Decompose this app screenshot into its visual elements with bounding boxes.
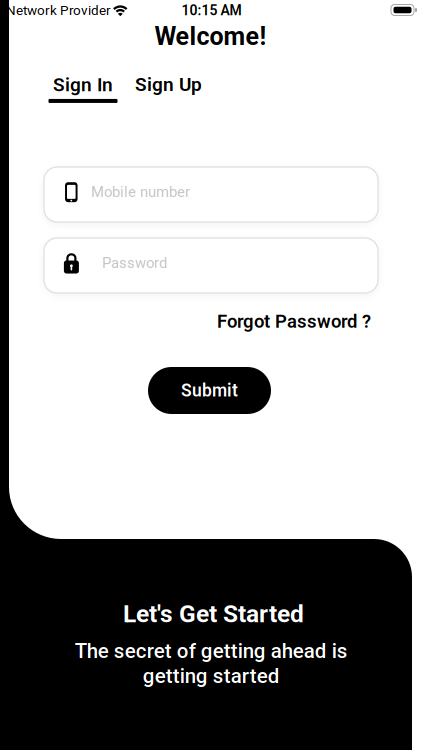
button[interactable]: Submit bbox=[148, 367, 271, 414]
staticText: Mobile number bbox=[91, 183, 190, 201]
staticText: Submit bbox=[181, 380, 238, 401]
button[interactable]: Mobile number bbox=[44, 167, 378, 222]
staticText: Sign Up bbox=[135, 73, 202, 96]
button[interactable]: Password bbox=[44, 238, 378, 293]
staticText: Password bbox=[102, 254, 167, 272]
staticText: The secret of getting ahead is getting s… bbox=[74, 639, 347, 688]
staticText: Network Provider bbox=[6, 3, 111, 18]
staticText: 10:15 AM bbox=[181, 2, 241, 19]
button[interactable]: Sign Up bbox=[135, 73, 202, 96]
button[interactable]: Sign In bbox=[48, 74, 117, 103]
staticText: Sign In bbox=[53, 74, 113, 96]
button[interactable]: Forgot Password ? bbox=[217, 311, 371, 332]
staticText: Let's Get Started bbox=[123, 600, 304, 628]
staticText: Welcome! bbox=[154, 22, 266, 51]
staticText: Forgot Password ? bbox=[217, 311, 371, 332]
